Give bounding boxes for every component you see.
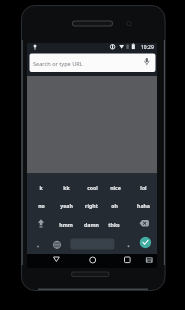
button[interactable] [143, 253, 156, 266]
staticText: nice [110, 184, 121, 191]
button[interactable] [50, 238, 64, 252]
button[interactable] [85, 253, 100, 266]
staticText: oh [111, 202, 118, 209]
button[interactable]: k [27, 181, 55, 193]
button[interactable]: oh [100, 199, 128, 211]
button[interactable]: yeah [52, 199, 80, 211]
staticText: haha [137, 202, 150, 209]
button[interactable] [70, 239, 114, 250]
button[interactable] [140, 237, 151, 248]
button[interactable]: thks [100, 218, 128, 230]
staticText: no [38, 202, 45, 209]
staticText: lol [140, 184, 147, 191]
staticText: kk [63, 184, 70, 191]
button[interactable]: hmm [52, 218, 80, 230]
staticText: damn [84, 221, 99, 228]
staticText: 10:29 [141, 44, 154, 51]
staticText: yeah [60, 202, 73, 209]
button[interactable]: cool [78, 181, 106, 193]
button[interactable]: haha [129, 199, 157, 211]
button[interactable]: Search or type URL [30, 54, 156, 73]
button[interactable]: lol [129, 181, 157, 193]
button[interactable]: nice [101, 181, 129, 193]
staticText: hmm [59, 221, 73, 228]
button[interactable] [34, 218, 48, 229]
button[interactable] [120, 253, 135, 266]
staticText: k [39, 184, 43, 191]
staticText: right [85, 202, 98, 209]
button[interactable] [137, 218, 151, 229]
staticText: thks [108, 221, 120, 228]
staticText: cool [87, 184, 98, 191]
button[interactable]: right [77, 199, 105, 211]
staticText: Search or type URL [33, 60, 83, 68]
button[interactable]: kk [52, 181, 80, 193]
button[interactable] [49, 253, 64, 266]
button[interactable]: no [27, 199, 55, 211]
button[interactable]: damn [77, 218, 105, 230]
